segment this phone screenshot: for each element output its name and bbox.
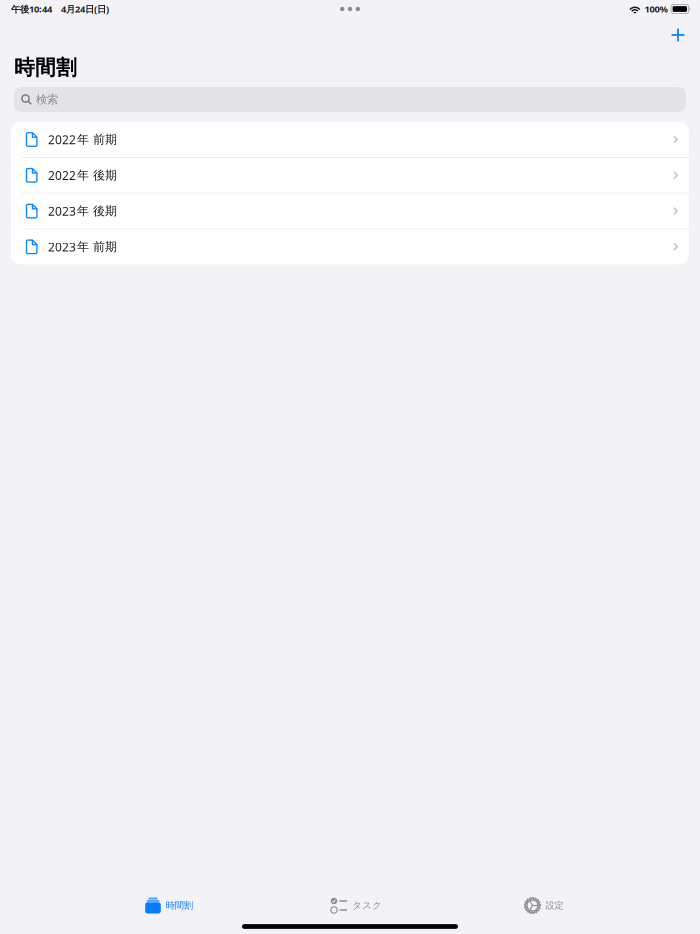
button[interactable]: 検索 — [14, 87, 686, 112]
button[interactable]: 2022 — [11, 122, 689, 158]
button[interactable]: タスク — [263, 891, 450, 919]
staticText: タスク — [352, 900, 382, 911]
staticText: 時間割 — [166, 900, 193, 911]
button[interactable]: 2023 — [11, 229, 689, 264]
staticText: 年 前期 — [77, 239, 117, 254]
button[interactable]: 新規作成 — [660, 20, 696, 50]
staticText: 100% — [644, 3, 667, 15]
staticText: 2023 — [48, 203, 76, 219]
button[interactable]: 設定 — [450, 891, 638, 919]
staticText: 2022 — [48, 131, 76, 148]
staticText: 設定 — [545, 900, 563, 911]
button[interactable]: 2022 — [11, 158, 689, 194]
staticText: 時間割 — [14, 54, 77, 80]
button[interactable]: 2023 — [11, 194, 689, 229]
staticText: 検索 — [36, 92, 58, 107]
staticText: 年 前期 — [77, 132, 117, 147]
button[interactable]: 時間割 — [75, 891, 263, 919]
staticText: 年 後期 — [77, 203, 117, 219]
staticText: 2022 — [48, 167, 76, 183]
staticText: 年 後期 — [77, 168, 117, 183]
staticText: 午後10:44 4月24日(日) — [11, 3, 109, 15]
staticText: 2023 — [48, 239, 76, 255]
